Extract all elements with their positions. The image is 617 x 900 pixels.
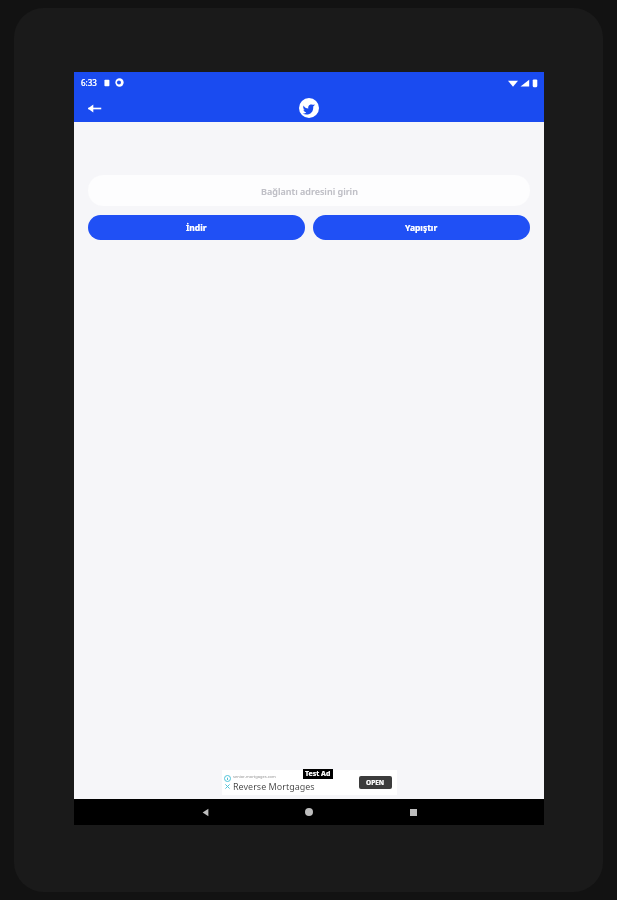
- button[interactable]: İndir: [88, 215, 305, 240]
- staticText: OPEN: [366, 778, 385, 787]
- button[interactable]: Yapıştır: [313, 215, 530, 240]
- button[interactable]: Back: [80, 94, 108, 122]
- staticText: Reverse Mortgages: [233, 780, 315, 792]
- staticText: Bağlantı adresini girin: [261, 185, 358, 197]
- button[interactable]: Home: [298, 801, 320, 823]
- button[interactable]: senior-mortgages.com: [222, 770, 397, 795]
- button[interactable]: Bağlantı adresini girin: [88, 175, 530, 206]
- staticText: senior-mortgages.com: [233, 774, 276, 779]
- button[interactable]: Back: [194, 801, 216, 823]
- button[interactable]: Recent apps: [402, 801, 424, 823]
- staticText: Test Ad: [305, 769, 331, 779]
- staticText: 6:33: [81, 77, 97, 88]
- button[interactable]: OPEN: [359, 776, 392, 789]
- staticText: İndir: [186, 222, 207, 234]
- staticText: Yapıştır: [405, 222, 438, 234]
- button[interactable]: Twitter: [298, 97, 320, 119]
